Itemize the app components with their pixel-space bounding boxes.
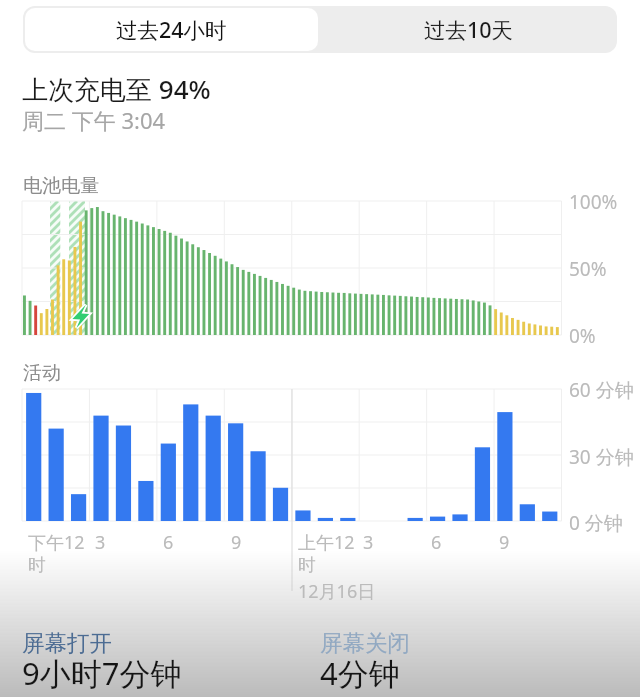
button[interactable]: 过去10天 — [320, 6, 617, 53]
staticText: 4分钟 — [320, 652, 400, 694]
staticText: 3 — [363, 530, 374, 555]
staticText: 上午12 时 — [298, 530, 355, 577]
staticText: 过去10天 — [424, 15, 514, 44]
staticText: 6 — [431, 530, 442, 555]
staticText: 下午12 时 — [28, 530, 85, 577]
staticText: 9 — [231, 530, 242, 555]
staticText: 周二 下午 3:04 — [22, 105, 166, 135]
staticText: 0 分钟 — [569, 510, 623, 536]
staticText: 3 — [95, 530, 106, 555]
staticText: 9 — [499, 530, 510, 555]
staticText: 30 分钟 — [569, 444, 634, 470]
staticText: 50% — [569, 256, 607, 282]
staticText: 屏幕关闭 — [320, 629, 410, 657]
staticText: 电池电量 — [23, 174, 99, 198]
staticText: 上次充电至 94% — [22, 71, 211, 107]
staticText: 屏幕打开 — [22, 629, 112, 657]
staticText: 6 — [163, 530, 174, 555]
staticText: 100% — [569, 189, 618, 215]
staticText: 活动 — [23, 361, 61, 385]
staticText: 9小时7分钟 — [22, 652, 182, 694]
button[interactable]: 过去24小时 — [25, 8, 318, 51]
staticText: 0% — [569, 323, 596, 349]
staticText: 60 分钟 — [569, 377, 634, 403]
staticText: 过去24小时 — [116, 15, 227, 44]
staticText: 12月16日 — [298, 579, 376, 604]
